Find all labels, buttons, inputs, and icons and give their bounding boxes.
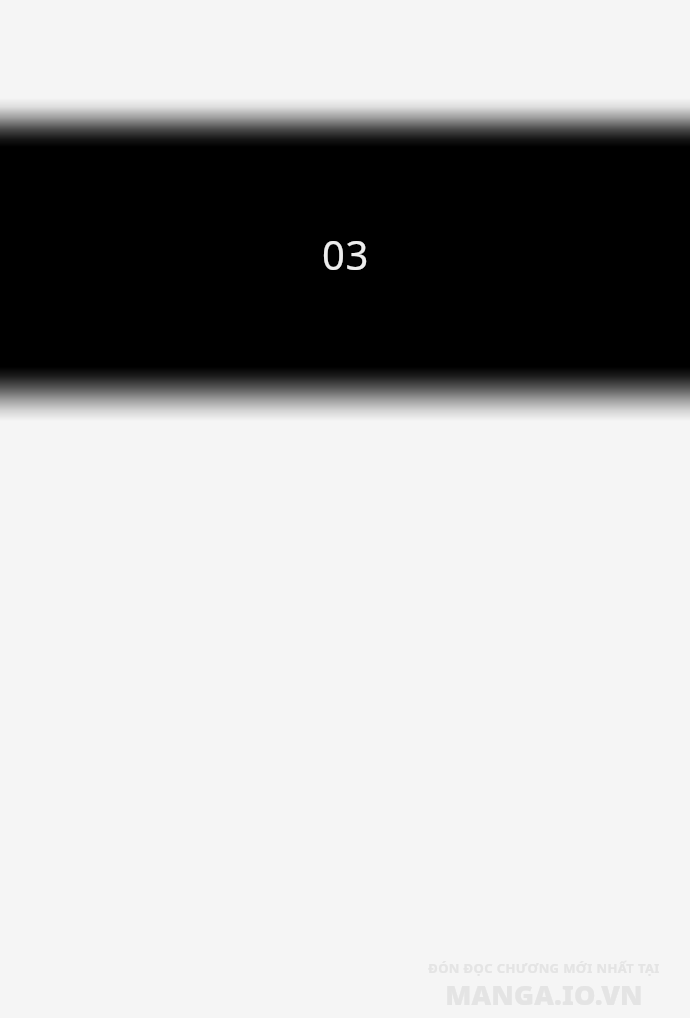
button[interactable]: ĐÓN ĐỌC CHƯƠNG MỚI NHẤT TẠI <box>428 959 660 1014</box>
staticText: ĐÓN ĐỌC CHƯƠNG MỚI NHẤT TẠI <box>428 959 660 977</box>
button[interactable]: Comic page image <box>0 0 690 1018</box>
staticText: 03 <box>322 227 369 281</box>
staticText: MANGA.IO.VN <box>445 976 643 1013</box>
